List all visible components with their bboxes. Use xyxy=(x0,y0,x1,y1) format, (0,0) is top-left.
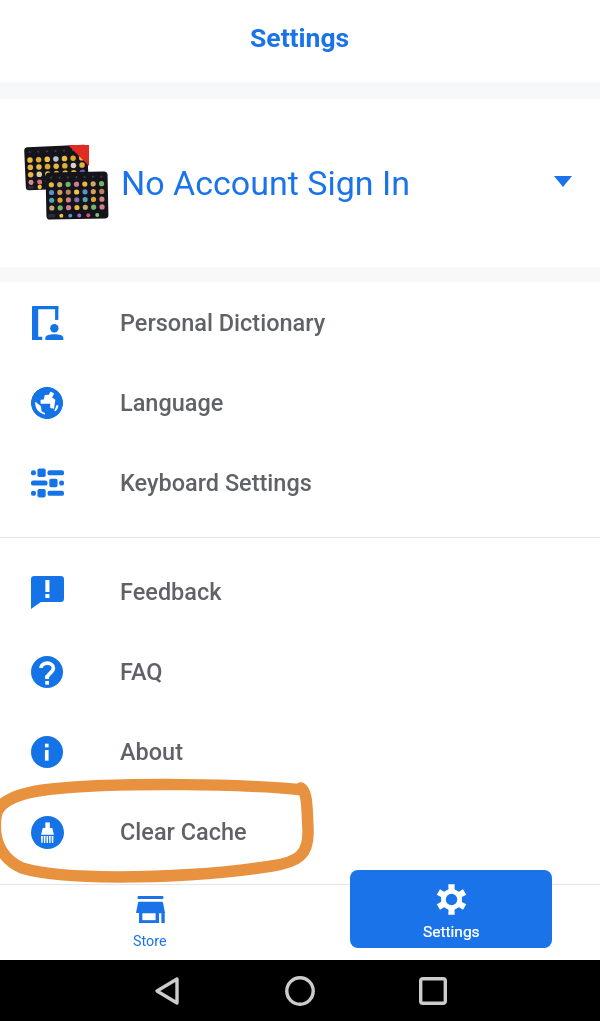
staticText: Settings xyxy=(250,22,350,53)
staticText: Feedback xyxy=(120,578,222,606)
staticText: FAQ xyxy=(120,658,163,686)
button[interactable]: Clear Cache xyxy=(0,792,600,872)
button[interactable]: Store xyxy=(0,885,300,960)
staticText: Keyboard Settings xyxy=(120,469,312,497)
button[interactable]: Expand account xyxy=(545,163,581,199)
button[interactable]: Language xyxy=(0,363,600,443)
button[interactable]: Recents xyxy=(405,963,461,1019)
staticText: Clear Cache xyxy=(120,818,247,846)
staticText: Personal Dictionary xyxy=(120,309,326,337)
button[interactable]: About xyxy=(0,712,600,792)
button[interactable]: Personal Dictionary xyxy=(0,283,600,363)
button[interactable]: Settings xyxy=(350,870,552,948)
button[interactable]: Keyboard Settings xyxy=(0,443,600,523)
staticText: About xyxy=(120,738,184,766)
staticText: Language xyxy=(120,389,224,417)
staticText: No Account Sign In xyxy=(121,163,411,203)
button[interactable]: No Account Sign In xyxy=(0,99,600,267)
button[interactable]: Home xyxy=(272,963,328,1019)
staticText: Store xyxy=(133,933,167,950)
button[interactable]: Back xyxy=(139,963,195,1019)
staticText: Settings xyxy=(423,923,480,941)
button[interactable]: Feedback xyxy=(0,552,600,632)
button[interactable]: FAQ xyxy=(0,632,600,712)
